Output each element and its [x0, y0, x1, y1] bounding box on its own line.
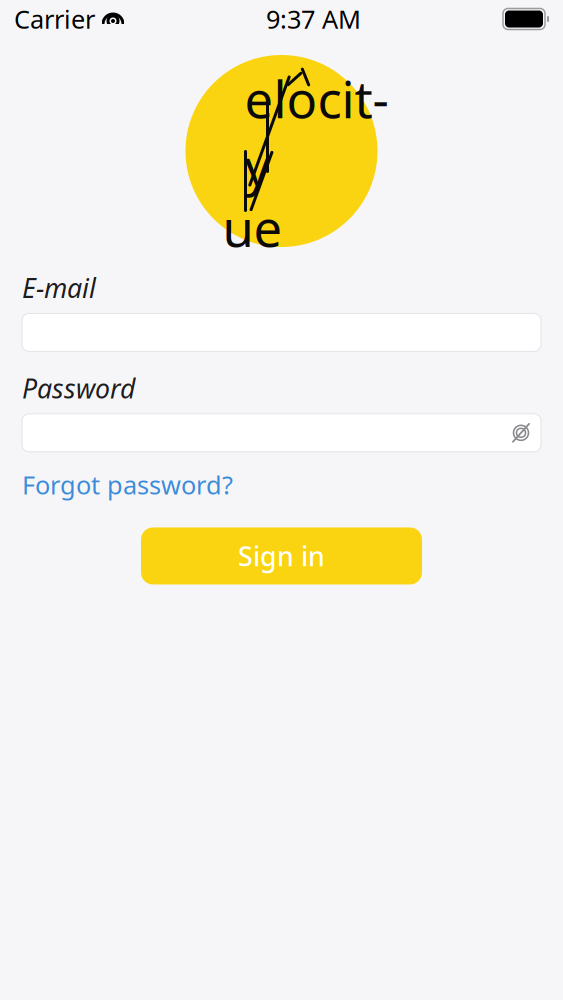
- button[interactable]: Forgot password?: [22, 452, 233, 505]
- staticText: Carrier: [14, 2, 95, 36]
- staticText: elocity: [244, 65, 388, 200]
- button[interactable]: Sign in: [141, 527, 422, 584]
- staticText: ue: [222, 194, 282, 261]
- staticText: 9:37 AM: [266, 2, 361, 36]
- staticText: Password: [22, 370, 135, 406]
- staticText: Sign in: [238, 538, 325, 574]
- staticText: Forgot password?: [22, 468, 233, 501]
- button[interactable]: Show password: [501, 414, 541, 452]
- staticText: E-mail: [22, 270, 96, 305]
